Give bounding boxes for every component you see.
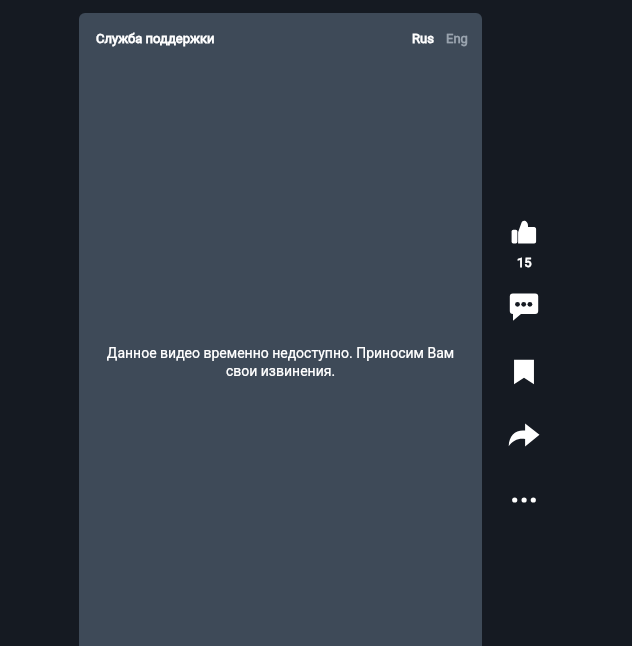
staticText: Служба поддержки [96,31,215,46]
staticText: Данное видео временно недоступно. Принос… [103,345,458,380]
button[interactable]: Eng [444,26,470,51]
staticText: 15 [517,255,532,270]
staticText: Eng [446,31,468,46]
button[interactable]: Like [500,208,548,256]
staticText: Rus [412,31,434,46]
button[interactable]: More options [500,476,548,524]
button[interactable]: Rus [410,26,436,51]
button[interactable]: Comments [500,283,548,331]
button[interactable]: Bookmark [500,348,548,396]
button[interactable]: Share [500,411,548,459]
